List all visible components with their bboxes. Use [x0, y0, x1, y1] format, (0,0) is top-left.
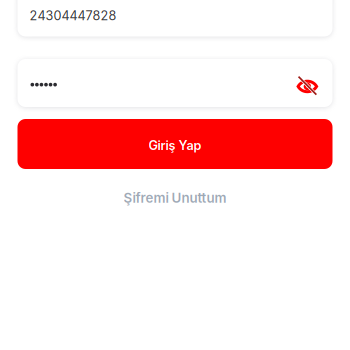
- staticText: 24304447828: [29, 8, 116, 23]
- button[interactable]: Şifreyi göster: [292, 71, 324, 103]
- button[interactable]: [17, 59, 332, 107]
- staticText: Şifremi Unuttum: [123, 190, 226, 206]
- button[interactable]: Şifremi Unuttum: [17, 186, 332, 210]
- button[interactable]: 24304447828: [17, 0, 332, 36]
- button[interactable]: Giriş Yap: [17, 119, 332, 169]
- staticText: Giriş Yap: [148, 138, 201, 153]
